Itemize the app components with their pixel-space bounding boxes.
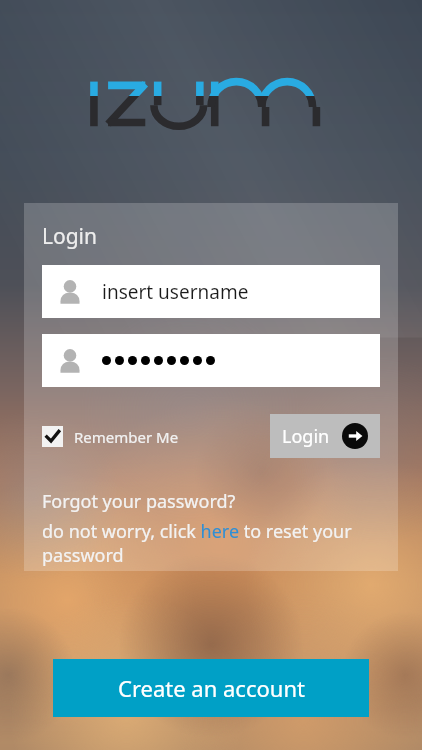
button[interactable] xyxy=(42,334,380,387)
button[interactable]: Remember Me xyxy=(42,426,179,447)
staticText: Forgot your password? xyxy=(42,489,236,514)
button[interactable]: Login xyxy=(270,414,380,458)
staticText: Login xyxy=(282,424,330,449)
staticText: Login xyxy=(42,222,98,251)
staticText: Remember Me xyxy=(74,427,179,447)
button[interactable]: Create an account xyxy=(53,659,369,717)
staticText: Create an account xyxy=(118,673,305,703)
button[interactable]: do not worry, click here to reset your p… xyxy=(42,519,380,567)
button[interactable]: insert username xyxy=(42,265,380,318)
staticText: insert username xyxy=(102,279,249,305)
